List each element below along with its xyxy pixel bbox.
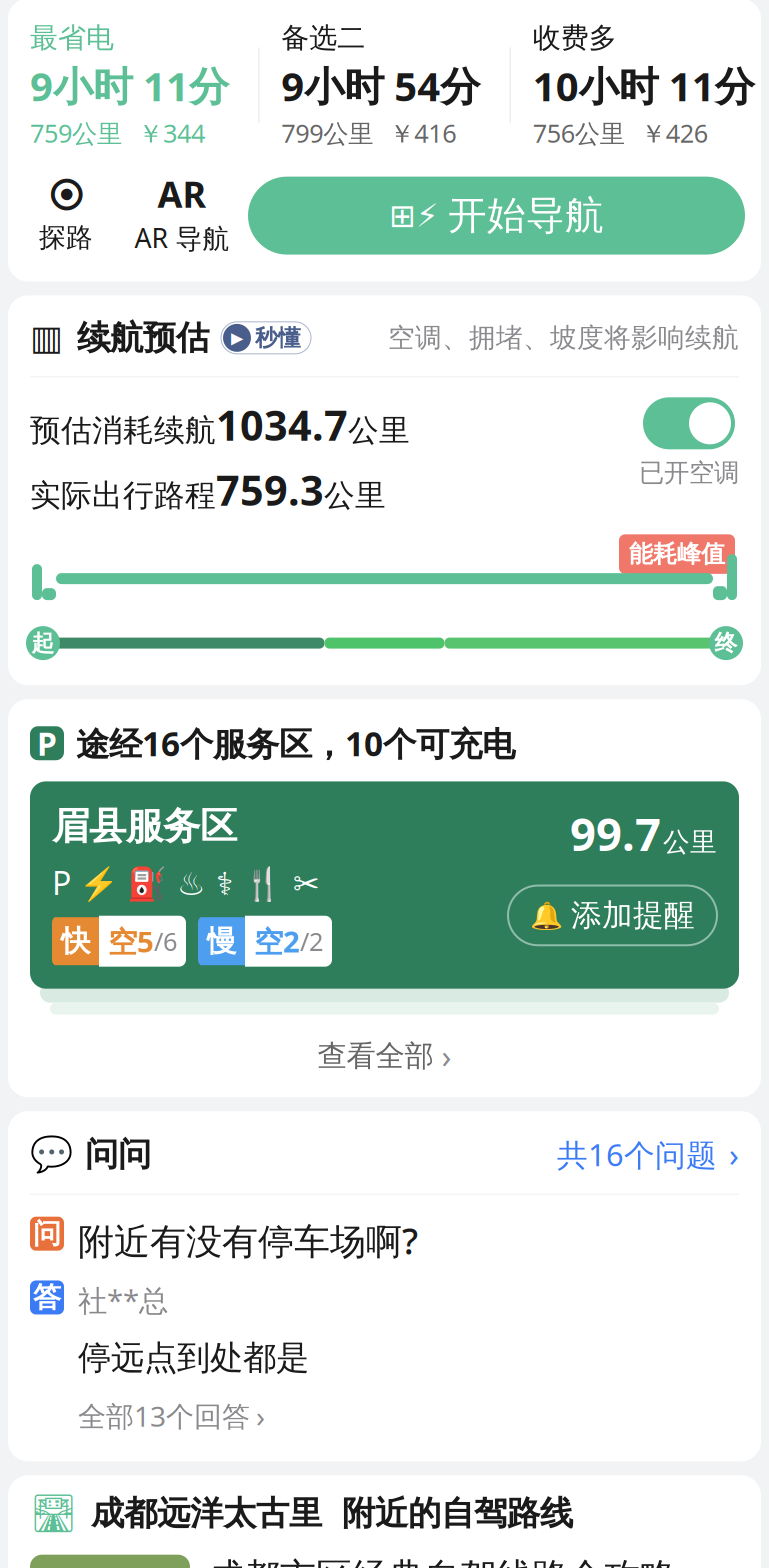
staticText: 续航预估 xyxy=(77,317,209,358)
staticText: › xyxy=(729,1133,739,1176)
staticText: AR xyxy=(157,170,206,218)
staticText: 查看全部 xyxy=(317,1038,433,1074)
staticText: 公里 xyxy=(348,412,410,449)
button[interactable]: 🔔 xyxy=(508,886,717,945)
staticText: 起 xyxy=(31,629,54,657)
staticText: P ⚡ ⛽ ♨ ⚕ 🍴 ✂ xyxy=(52,861,320,904)
button[interactable]: AR xyxy=(124,176,240,255)
staticText: /6 xyxy=(154,924,177,958)
button[interactable]: 最省电 xyxy=(8,21,258,150)
staticText: 快 xyxy=(61,923,90,959)
staticText: 🛣 xyxy=(30,1492,77,1535)
staticText: ⊞⚡︎ xyxy=(389,197,438,234)
staticText: P xyxy=(37,722,57,764)
staticText: 共16个问题 xyxy=(557,1134,717,1175)
staticText: 空5 xyxy=(108,922,154,961)
button[interactable]: ⊞⚡︎ xyxy=(248,177,745,255)
staticText: › xyxy=(256,1396,265,1435)
staticText: 成都市区经典自驾线路全攻略 xyxy=(208,1555,676,1568)
button[interactable]: ⦿ xyxy=(8,177,124,254)
staticText: 途经16个服务区，10个可充电 xyxy=(76,721,515,765)
staticText: 759.3 xyxy=(216,462,324,517)
staticText: 停远点到处都是 xyxy=(78,1337,309,1378)
staticText: 答 xyxy=(33,1280,61,1315)
staticText: 💬 xyxy=(30,1135,73,1174)
staticText: 空2 xyxy=(254,922,300,961)
staticText: 1034.7 xyxy=(216,397,348,452)
staticText: 社**总 xyxy=(78,1280,168,1319)
staticText: 756公里 ￥426 xyxy=(533,116,708,150)
staticText: 实际出行路程 xyxy=(30,477,216,514)
staticText: 🔔 xyxy=(530,900,563,931)
staticText: 能耗峰值 xyxy=(629,539,725,569)
button[interactable]: 问 xyxy=(8,1195,761,1461)
staticText: 799公里 ￥416 xyxy=(281,116,456,150)
button[interactable]: 收费多 xyxy=(511,21,761,150)
button[interactable]: 备选二 xyxy=(259,21,510,150)
staticText: 9小时 54分 xyxy=(281,59,480,112)
staticText: 开始导航 xyxy=(448,192,604,239)
staticText: 终 xyxy=(714,629,737,657)
button[interactable]: ▶ xyxy=(221,322,311,354)
staticText: 问 xyxy=(33,1216,61,1251)
staticText: ⦿ xyxy=(48,178,84,213)
button[interactable]: 💬 xyxy=(8,1111,761,1194)
staticText: AR 导航 xyxy=(134,220,229,255)
button[interactable]: 查看全部 xyxy=(8,1015,761,1097)
staticText: 问问 xyxy=(85,1134,151,1175)
staticText: /2 xyxy=(300,924,323,958)
staticText: 最省电 xyxy=(30,21,114,55)
staticText: 探路 xyxy=(39,221,93,254)
staticText: 空调、拥堵、坡度将影响续航 xyxy=(388,321,739,354)
staticText: 759公里 ￥344 xyxy=(30,116,205,150)
staticText: › xyxy=(441,1035,451,1077)
staticText: 全部13个回答 xyxy=(78,1397,250,1434)
staticText: 添加提醒 xyxy=(571,897,695,934)
staticText: 附近有没有停车场啊? xyxy=(78,1217,418,1264)
staticText: 9小时 11分 xyxy=(30,59,229,112)
staticText: ▶ xyxy=(231,329,243,347)
button[interactable]: 成都市区经典自驾线路全攻略 xyxy=(8,1535,761,1568)
staticText: 10小时 11分 xyxy=(533,59,755,112)
staticText: 公里 xyxy=(324,477,386,514)
staticText: 眉县服务区 xyxy=(52,803,237,849)
staticText: 秒懂 xyxy=(255,324,301,352)
staticText: 收费多 xyxy=(533,21,617,55)
staticText: 预估消耗续航 xyxy=(30,412,216,449)
staticText: 慢 xyxy=(207,923,236,959)
staticText: 99.7 xyxy=(570,803,661,864)
button[interactable]: 已开空调 xyxy=(639,397,739,488)
staticText: 公里 xyxy=(663,826,717,859)
staticText: 成都远洋太古里 附近的自驾路线 xyxy=(91,1493,573,1534)
staticText: 已开空调 xyxy=(639,457,739,488)
staticText: 备选二 xyxy=(281,21,365,55)
staticText: ▥ xyxy=(30,318,63,357)
